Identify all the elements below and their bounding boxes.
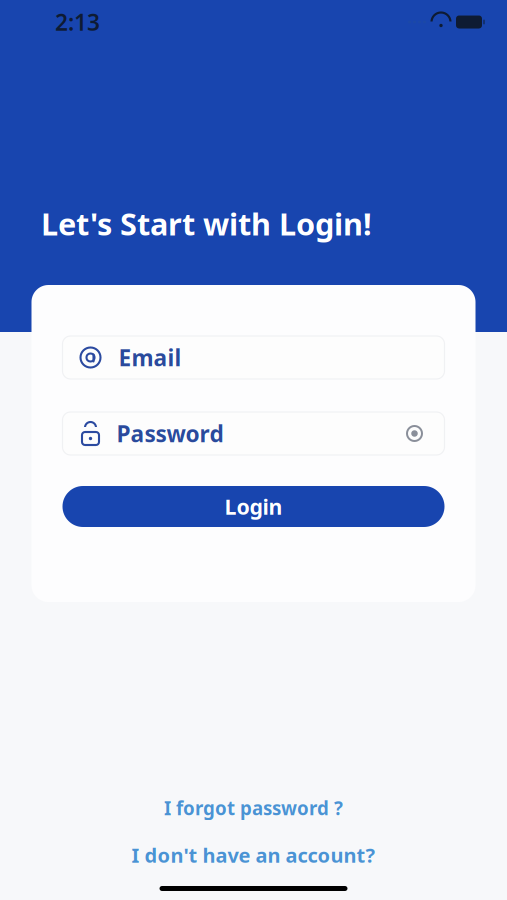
staticText: I don't have an account? [131, 842, 375, 868]
staticText: Login [224, 492, 282, 521]
button[interactable]: Login [62, 486, 444, 527]
staticText: Let's Start with Login! [41, 203, 372, 244]
staticText: 2:13 [55, 7, 100, 37]
staticText: I forgot password ? [164, 796, 343, 820]
button[interactable]: Email [62, 336, 444, 379]
staticText: Password [116, 418, 223, 448]
button[interactable]: I don't have an account? [103, 840, 403, 870]
button[interactable]: Password [62, 412, 444, 455]
staticText: Email [118, 342, 181, 372]
button[interactable]: I forgot password ? [103, 793, 403, 823]
